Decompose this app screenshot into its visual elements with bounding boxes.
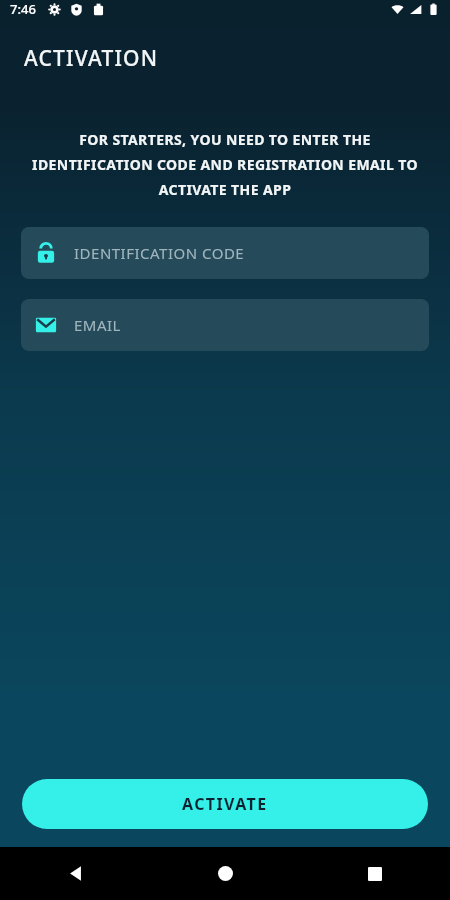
other: Email [35, 314, 57, 336]
staticText: ACTIVATION [24, 44, 159, 73]
staticText: EMAIL [74, 315, 121, 335]
button[interactable]: Recent apps [300, 847, 450, 900]
staticText: FOR STARTERS, YOU NEED TO ENTER THE IDEN… [24, 130, 426, 199]
button[interactable]: ACTIVATE [22, 779, 428, 829]
staticText: ACTIVATE [182, 793, 268, 815]
button[interactable]: Back [0, 847, 150, 900]
button[interactable]: Identification code [21, 227, 429, 279]
button[interactable]: Email [21, 299, 429, 351]
staticText: 7:46 [10, 0, 36, 18]
other: Identification code [35, 242, 57, 264]
button[interactable]: Home [150, 847, 300, 900]
staticText: IDENTIFICATION CODE [74, 243, 245, 263]
